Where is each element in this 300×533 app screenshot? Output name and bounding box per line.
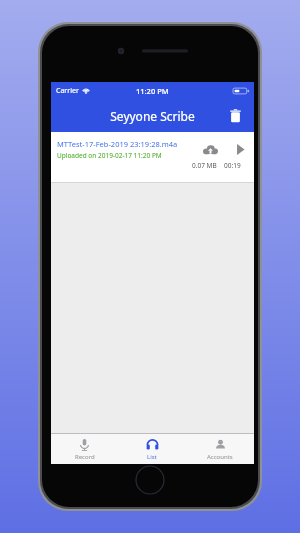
staticText: MTTest-17-Feb-2019 23:19:28.m4a — [57, 139, 178, 149]
staticText: 11:20 PM — [136, 86, 169, 96]
button[interactable]: Accounts — [186, 434, 254, 464]
staticText: Accounts — [207, 453, 233, 461]
button[interactable]: Record — [51, 434, 118, 464]
button[interactable]: MTTest-17-Feb-2019 23:19:28.m4a — [51, 132, 254, 183]
button[interactable]: Delete — [223, 104, 247, 128]
staticText: Seyyone Scribe — [110, 108, 195, 124]
staticText: Uploaded on 2019-02-17 11:20 PM — [57, 151, 162, 160]
staticText: 0.07 MB — [192, 161, 217, 170]
button[interactable]: Upload — [199, 138, 221, 160]
staticText: Carrier — [56, 86, 79, 96]
button[interactable]: Play — [229, 138, 251, 160]
staticText: 00:19 — [224, 161, 241, 170]
staticText: List — [147, 453, 157, 461]
button[interactable]: List — [118, 434, 186, 464]
staticText: Record — [75, 453, 95, 461]
